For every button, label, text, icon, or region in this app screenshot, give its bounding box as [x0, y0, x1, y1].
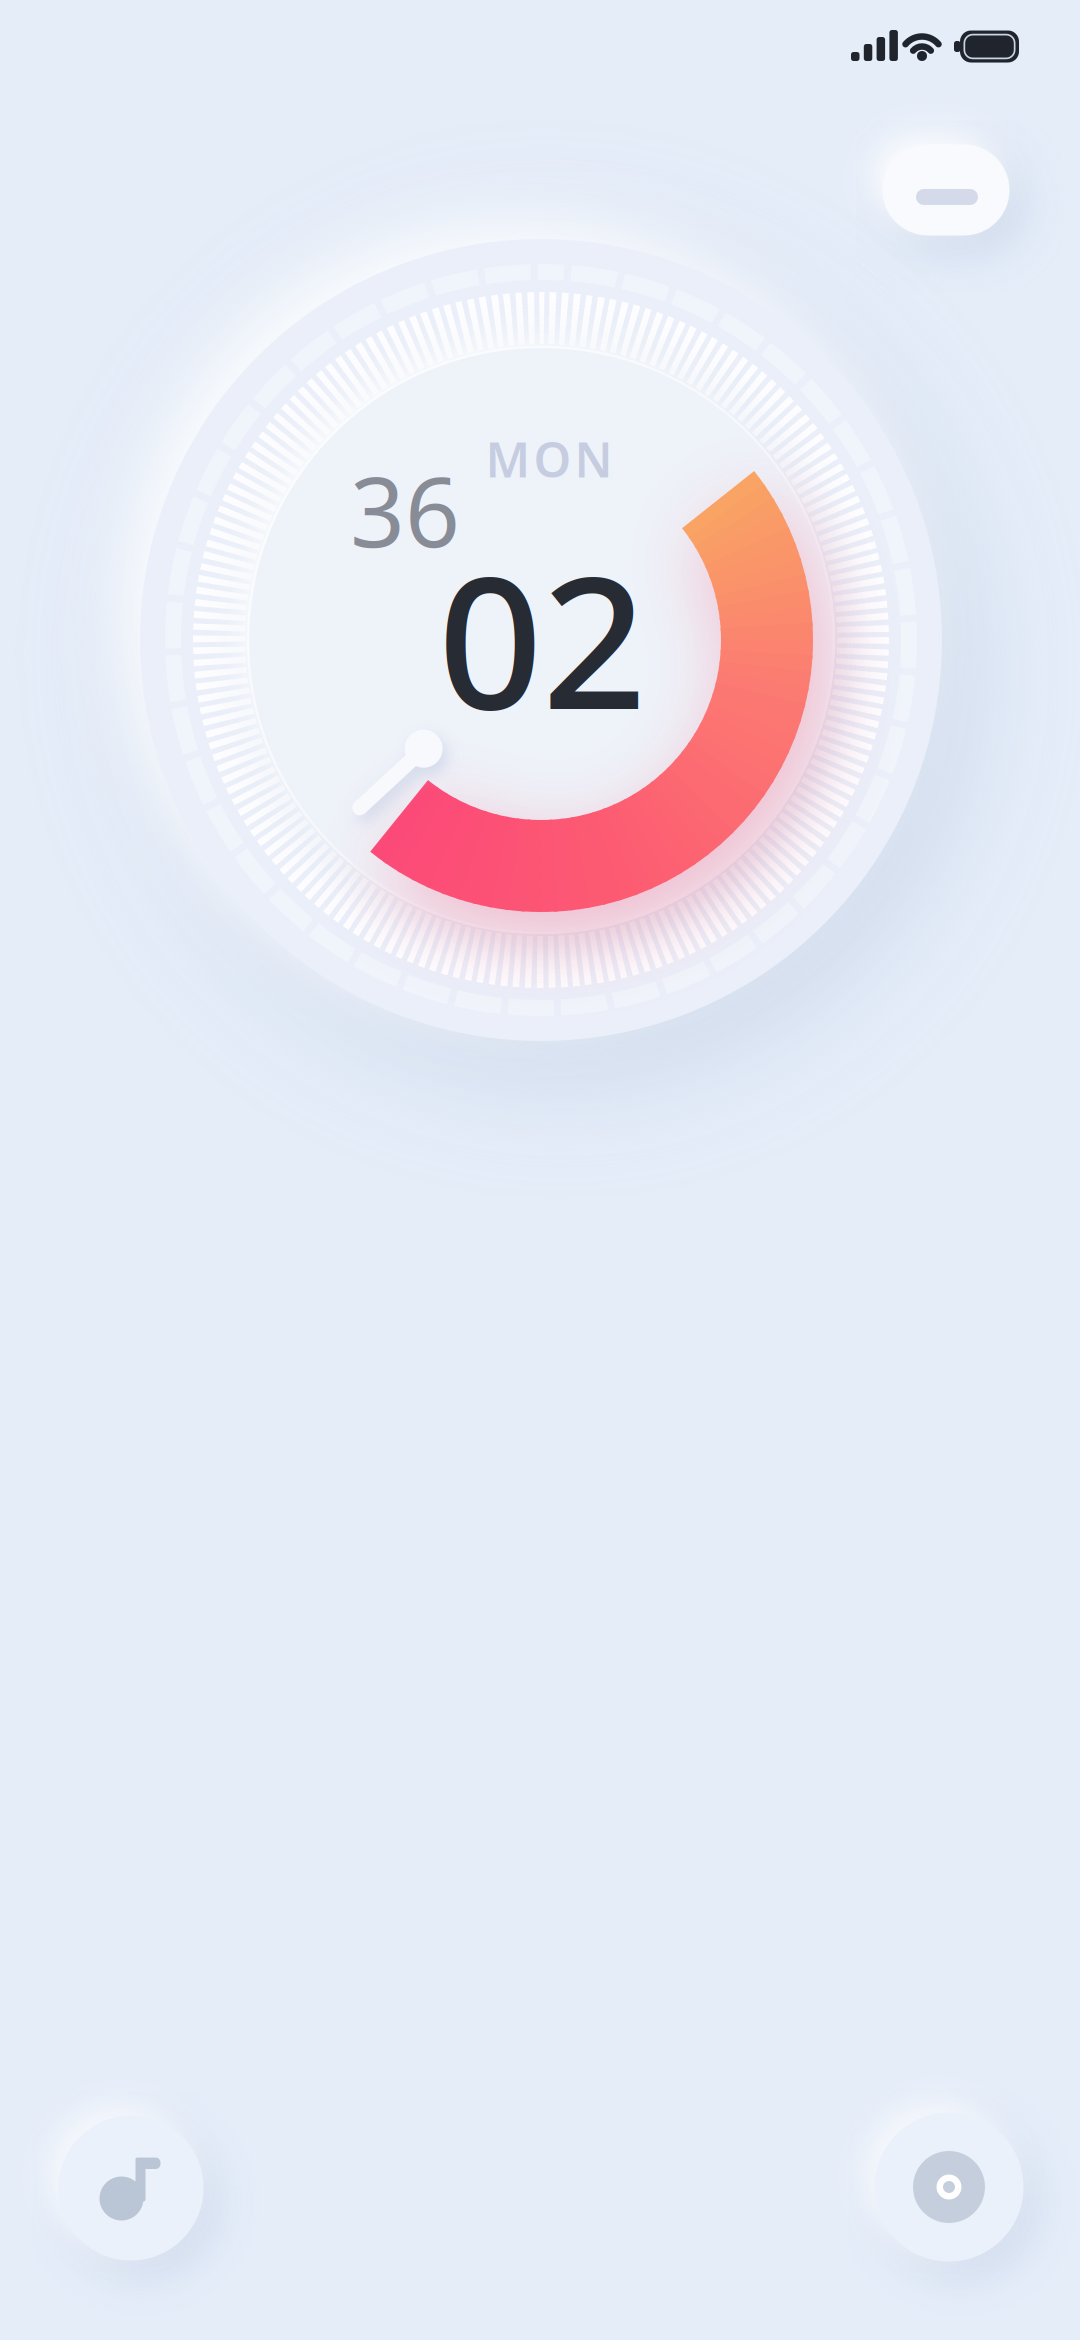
button[interactable] [58, 2115, 203, 2260]
staticText: 02 [438, 517, 646, 759]
staticText: 36 [350, 446, 460, 574]
button[interactable] [882, 144, 1009, 235]
staticText: MON [485, 427, 612, 491]
button[interactable] [874, 2112, 1023, 2261]
